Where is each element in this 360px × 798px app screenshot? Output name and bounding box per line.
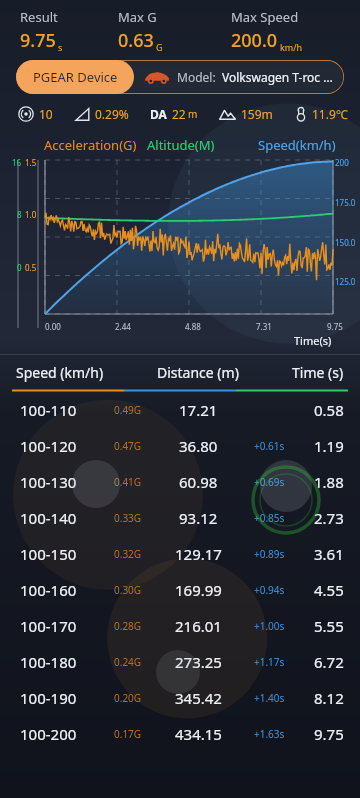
staticText: +0.85s — [254, 511, 285, 525]
staticText: 1.19 — [314, 436, 344, 456]
other: Vehicle — [144, 70, 170, 84]
staticText: 0.30G — [114, 583, 142, 597]
staticText: 10 — [39, 106, 53, 122]
staticText: 150.0 — [335, 237, 356, 248]
staticText: 129.17 — [175, 544, 222, 564]
staticText: 1.5 — [25, 157, 37, 168]
button[interactable]: 100-180 — [0, 644, 360, 680]
staticText: 8.12 — [314, 688, 344, 708]
staticText: 200 — [335, 157, 349, 168]
staticText: 200.0 — [231, 28, 278, 53]
staticText: 0.41G — [114, 475, 142, 489]
staticText: 0.5 — [25, 262, 37, 273]
staticText: 22 — [172, 106, 186, 122]
staticText: 2.44 — [115, 321, 131, 332]
button[interactable]: 100-130 — [0, 464, 360, 500]
staticText: 0.33G — [114, 511, 142, 525]
staticText: 1.88 — [314, 472, 344, 492]
staticText: km/h — [280, 41, 303, 53]
staticText: +1.00s — [254, 619, 285, 633]
staticText: 175.0 — [335, 197, 356, 208]
staticText: Volkswagen T-roc … — [222, 69, 333, 85]
staticText: 169.99 — [175, 580, 222, 600]
staticText: 2.73 — [314, 508, 344, 528]
staticText: 100-180 — [20, 652, 77, 672]
staticText: 36.80 — [179, 436, 218, 456]
staticText: Speed(km/h) — [258, 136, 336, 154]
staticText: 1.0 — [25, 209, 37, 220]
staticText: 93.12 — [179, 508, 218, 528]
staticText: 159m — [241, 106, 273, 122]
staticText: Model: — [177, 69, 216, 85]
staticText: 0.58 — [314, 400, 344, 420]
button[interactable]: PGEAR Device — [16, 60, 134, 94]
button[interactable]: 100-200 — [0, 716, 360, 752]
staticText: 9.75 — [327, 321, 343, 332]
button[interactable]: 100-120 — [0, 428, 360, 464]
staticText: Time(s) — [294, 333, 332, 348]
other: Altitude — [219, 106, 236, 123]
staticText: 60.98 — [179, 472, 218, 492]
staticText: Time (s) — [292, 363, 344, 382]
staticText: 100-110 — [20, 400, 77, 420]
staticText: 9.75 — [314, 724, 344, 744]
staticText: Distance (m) — [157, 363, 239, 382]
staticText: Speed (km/h) — [16, 363, 104, 382]
staticText: Max Speed — [231, 8, 299, 26]
staticText: +1.40s — [254, 691, 285, 705]
staticText: 0 — [17, 262, 22, 273]
staticText: 7.31 — [256, 321, 272, 332]
staticText: 17.21 — [179, 400, 218, 420]
other: Slope — [75, 107, 90, 122]
staticText: Result — [20, 8, 58, 26]
staticText: 100-150 — [20, 544, 77, 564]
staticText: +0.89s — [254, 547, 285, 561]
button[interactable]: 100-150 — [0, 536, 360, 572]
staticText: 5.55 — [314, 616, 344, 636]
staticText: Acceleration(G) — [44, 136, 137, 154]
staticText: 100-160 — [20, 580, 77, 600]
staticText: 11.9℃ — [312, 106, 348, 122]
other: GPS satellites — [18, 106, 34, 122]
button[interactable]: PGEAR Device — [16, 60, 344, 94]
button[interactable]: 100-160 — [0, 572, 360, 608]
staticText: 16 — [12, 157, 22, 168]
staticText: 0.00 — [45, 321, 61, 332]
staticText: 0.32G — [114, 547, 142, 561]
staticText: 345.42 — [175, 688, 222, 708]
staticText: 100-140 — [20, 508, 77, 528]
staticText: Altitude(M) — [147, 136, 215, 154]
staticText: +0.61s — [254, 439, 285, 453]
other: Temperature — [294, 107, 308, 121]
staticText: G — [156, 41, 163, 53]
staticText: 0.63 — [118, 28, 154, 53]
staticText: 434.15 — [175, 724, 222, 744]
staticText: 125.0 — [335, 276, 356, 287]
staticText: 0.29% — [95, 106, 129, 122]
staticText: 0.17G — [114, 727, 142, 741]
staticText: 4.88 — [185, 321, 201, 332]
staticText: 0.20G — [114, 691, 142, 705]
staticText: 100-170 — [20, 616, 77, 636]
staticText: Max G — [118, 8, 157, 26]
staticText: s — [58, 41, 63, 53]
staticText: PGEAR Device — [33, 68, 118, 86]
button[interactable]: 100-170 — [0, 608, 360, 644]
staticText: 9.75 — [20, 28, 56, 53]
staticText: 100-120 — [20, 436, 77, 456]
staticText: +0.69s — [254, 475, 285, 489]
staticText: 8 — [17, 209, 22, 220]
button[interactable]: 100-110 — [0, 392, 360, 428]
staticText: 6.72 — [314, 652, 344, 672]
button[interactable]: 100-140 — [0, 500, 360, 536]
button[interactable]: 100-190 — [0, 680, 360, 716]
staticText: DA — [150, 106, 167, 122]
staticText: 100-200 — [20, 724, 77, 744]
staticText: m — [188, 107, 198, 121]
staticText: 100-130 — [20, 472, 77, 492]
staticText: 0.49G — [114, 403, 142, 417]
staticText: 3.61 — [314, 544, 344, 564]
staticText: 100-190 — [20, 688, 77, 708]
staticText: 0.28G — [114, 619, 142, 633]
staticText: 0.47G — [114, 439, 142, 453]
